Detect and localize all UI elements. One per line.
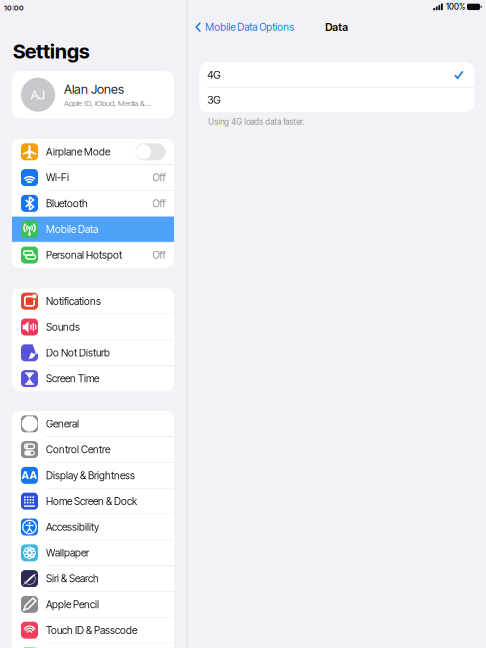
button[interactable]: General	[12, 411, 174, 437]
staticText: Touch ID & Passcode	[46, 624, 137, 636]
staticText: Personal Hotspot	[46, 249, 122, 261]
button[interactable]: Wallpaper	[12, 540, 174, 566]
button[interactable]: Do Not Disturb	[12, 340, 174, 366]
button[interactable]: Wi-Fi	[12, 165, 174, 191]
staticText: Off	[152, 249, 165, 261]
button[interactable]: Apple Pencil	[12, 592, 174, 618]
staticText: Off	[152, 171, 165, 184]
button[interactable]: Screen Time	[12, 366, 174, 391]
staticText: General	[46, 418, 79, 430]
staticText: Bluetooth	[46, 197, 88, 210]
button[interactable]: Siri & Search	[12, 566, 174, 592]
staticText: AJ	[30, 87, 45, 103]
staticText: Wi-Fi	[46, 171, 69, 184]
staticText: 100%	[446, 2, 465, 12]
button[interactable]: Control Centre	[12, 437, 174, 463]
staticText: 4G	[207, 68, 220, 81]
staticText: Sounds	[46, 321, 80, 333]
button[interactable]: Home Screen & Dock	[12, 489, 174, 514]
button[interactable]: Sounds	[12, 314, 174, 340]
staticText: Display & Brightness	[46, 469, 135, 482]
staticText: Data	[325, 21, 348, 34]
button[interactable]: Battery	[12, 643, 174, 648]
staticText: 10:00	[4, 3, 24, 12]
button[interactable]: Personal Hotspot	[12, 242, 174, 268]
staticText: Apple Pencil	[46, 598, 99, 611]
button[interactable]: 3G	[199, 88, 474, 112]
button[interactable]: 4G	[199, 63, 474, 87]
staticText: Screen Time	[46, 372, 99, 385]
button[interactable]: Accessibility	[12, 514, 174, 540]
button[interactable]: Bluetooth	[12, 191, 174, 217]
staticText: 3G	[207, 93, 220, 106]
button[interactable]: Airplane Mode	[12, 139, 174, 165]
staticText: Using 4G loads data faster.	[208, 117, 304, 127]
staticText: Siri & Search	[46, 572, 99, 585]
staticText: Apple ID, iCloud, Media &…	[64, 98, 151, 108]
staticText: Wallpaper	[46, 547, 89, 559]
staticText: Mobile Data	[46, 223, 98, 235]
staticText: Alan Jones	[64, 81, 124, 97]
staticText: Off	[152, 197, 165, 210]
staticText: Notifications	[46, 295, 101, 307]
staticText: AA	[21, 469, 37, 482]
button[interactable]: AJ	[12, 71, 174, 118]
button[interactable]: Touch ID & Passcode	[12, 618, 174, 643]
staticText: Do Not Disturb	[46, 347, 110, 359]
button[interactable]: Notifications	[12, 289, 174, 314]
button[interactable]: AA	[12, 463, 174, 489]
staticText: Control Centre	[46, 443, 110, 456]
button[interactable]: Mobile Data Options	[195, 21, 298, 33]
staticText: Settings	[13, 39, 90, 63]
staticText: Accessibility	[46, 521, 99, 533]
button[interactable]: Mobile Data	[12, 217, 174, 242]
staticText: Airplane Mode	[46, 146, 110, 158]
staticText: Home Screen & Dock	[46, 495, 137, 507]
staticText: Mobile Data Options	[205, 21, 294, 33]
